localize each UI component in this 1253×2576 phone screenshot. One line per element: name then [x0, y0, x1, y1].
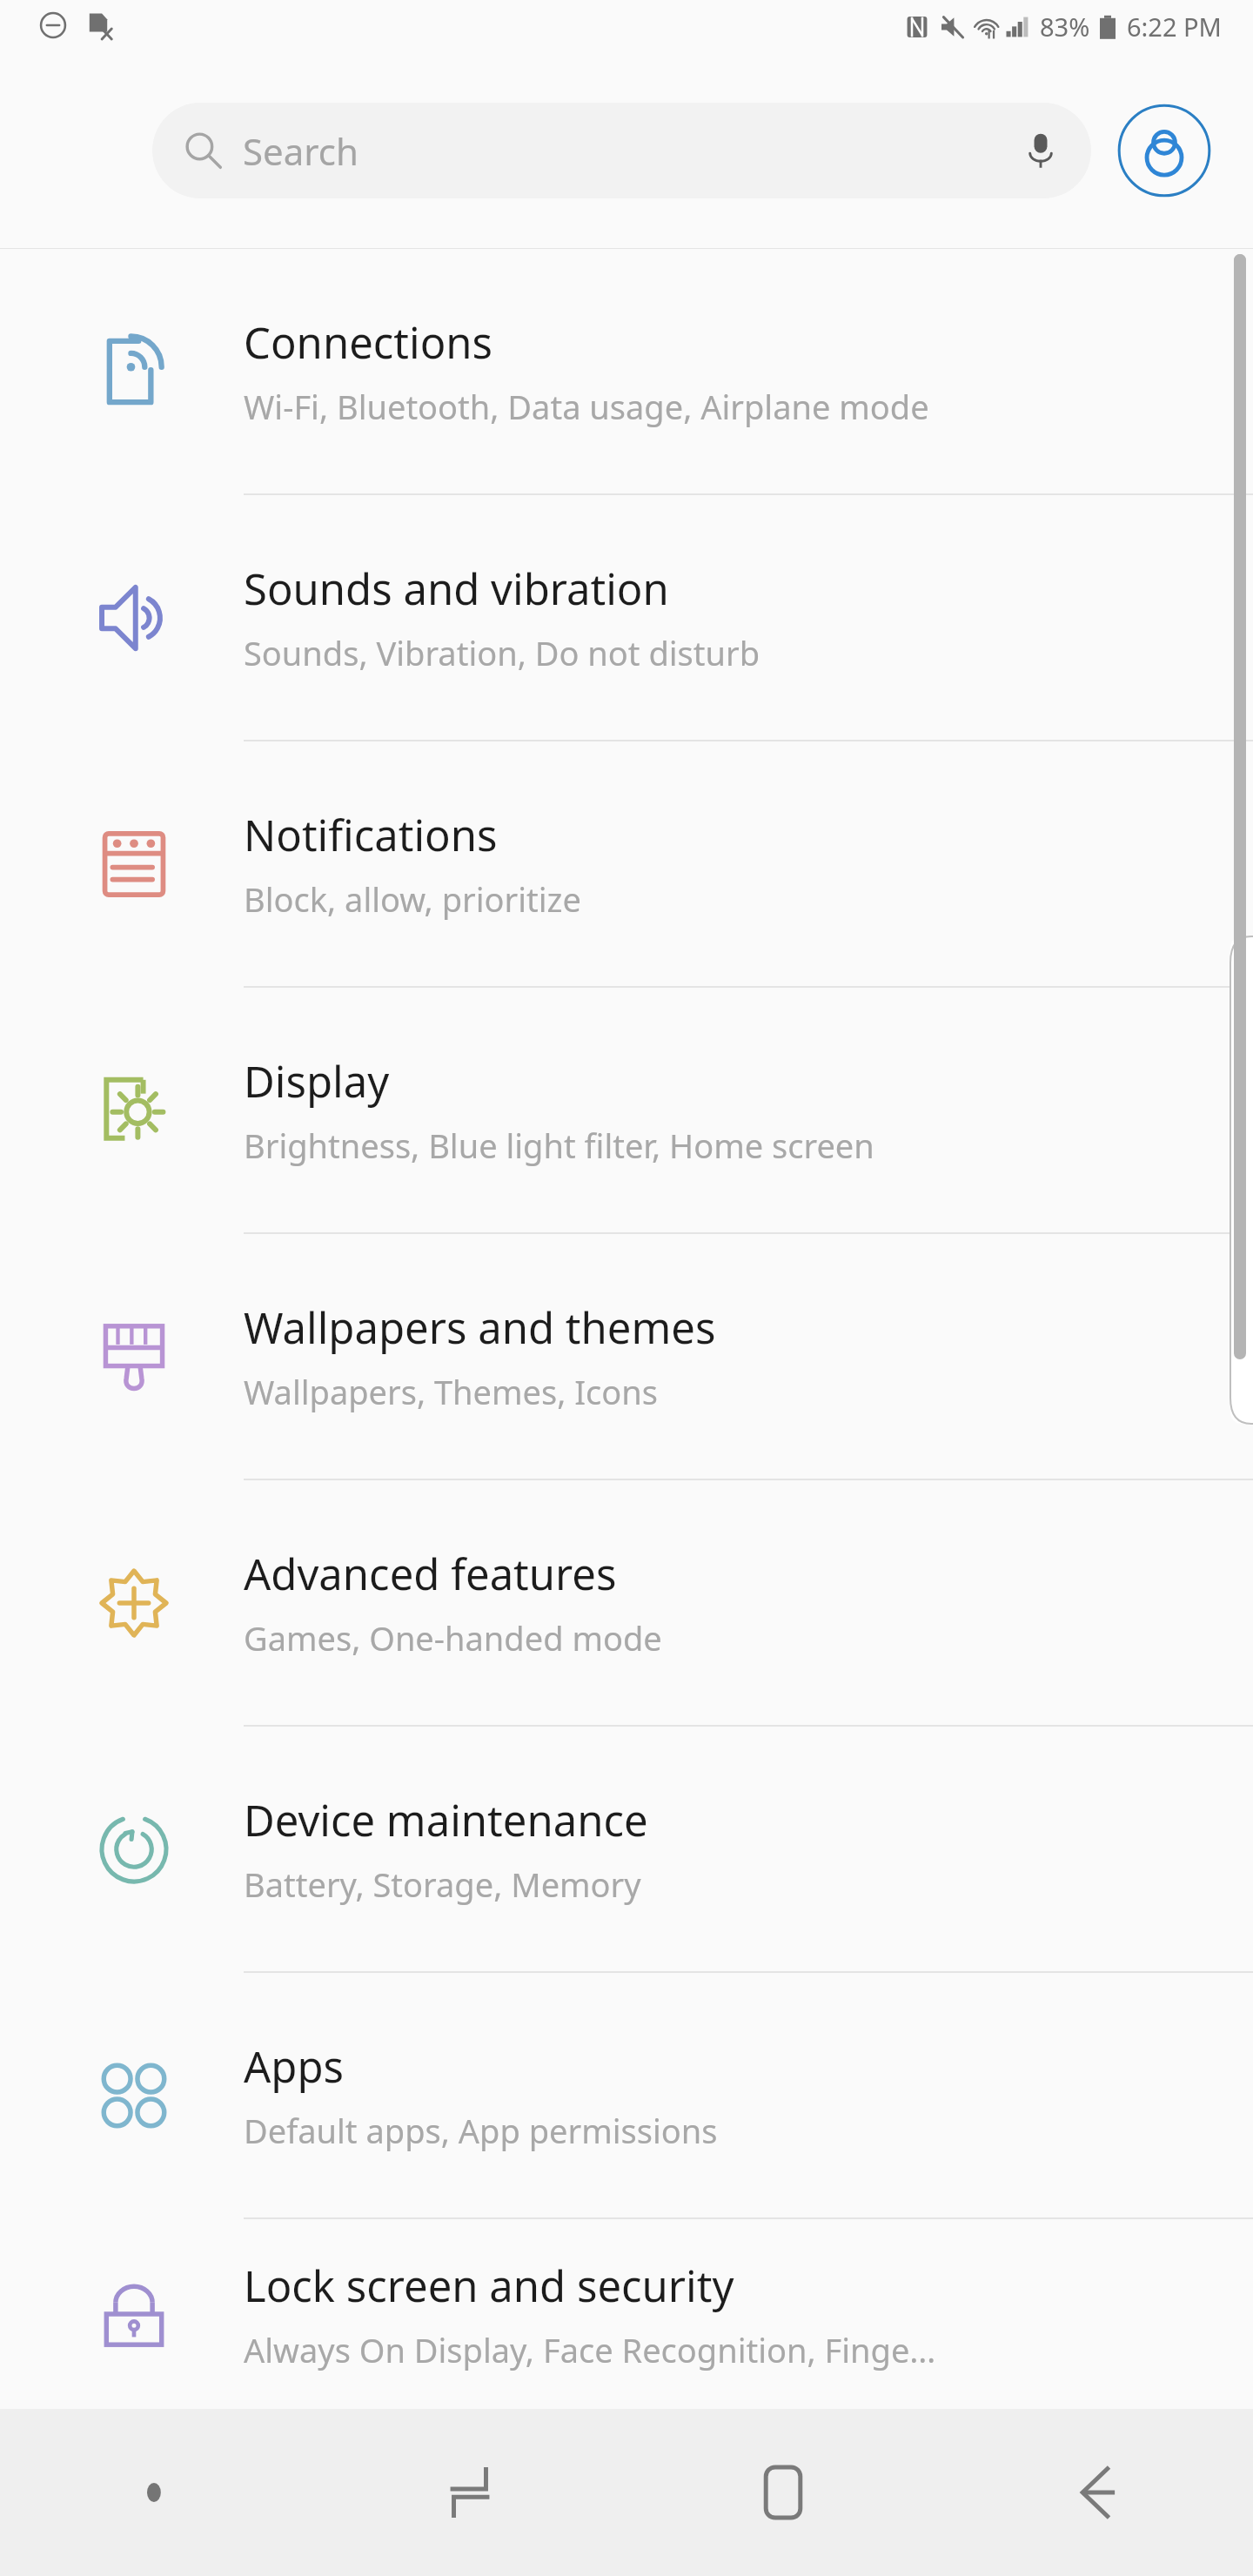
staticText: Display [244, 1052, 390, 1110]
button[interactable]: Advanced features [0, 1480, 1253, 1725]
button[interactable]: Device maintenance [0, 1727, 1253, 1971]
staticText: Games, One-handed mode [244, 1615, 662, 1660]
staticText: Wi-Fi, Bluetooth, Data usage, Airplane m… [244, 384, 929, 429]
staticText: Connections [244, 313, 493, 372]
staticText: Battery, Storage, Memory [244, 1862, 641, 1907]
staticText: Device maintenance [244, 1791, 648, 1849]
staticText: Sounds, Vibration, Do not disturb [244, 630, 761, 675]
button[interactable]: Connections [0, 249, 1253, 493]
staticText: 6:22 PM [1127, 10, 1222, 44]
button[interactable]: Sounds and vibration [0, 495, 1253, 740]
staticText: Notifications [244, 806, 498, 864]
staticText: Sounds and vibration [244, 560, 669, 618]
staticText: Search [243, 126, 358, 176]
staticText: Wallpapers, Themes, Icons [244, 1369, 659, 1414]
staticText: Block, allow, prioritize [244, 876, 581, 922]
button[interactable]: Home [626, 2409, 940, 2576]
staticText: Default apps, App permissions [244, 2108, 718, 2153]
button[interactable]: Wallpapers and themes [0, 1234, 1253, 1479]
staticText: Wallpapers and themes [244, 1298, 716, 1357]
button[interactable]: Apps [0, 1973, 1253, 2217]
button[interactable]: Notifications [0, 741, 1253, 986]
staticText: Brightness, Blue light filter, Home scre… [244, 1123, 874, 1168]
staticText: Lock screen and security [244, 2257, 734, 2315]
button[interactable]: Display [0, 988, 1253, 1232]
button[interactable]: Recents [313, 2409, 626, 2576]
staticText: Apps [244, 2037, 345, 2096]
button[interactable]: Lock screen and security [0, 2219, 1253, 2409]
other: Voice search [1022, 131, 1060, 170]
button[interactable]: Back [940, 2409, 1253, 2576]
staticText: 83% [1040, 10, 1090, 44]
staticText: Advanced features [244, 1545, 617, 1603]
staticText: Always On Display, Face Recognition, Fin… [244, 2327, 936, 2372]
button[interactable]: Account [1117, 104, 1211, 198]
button[interactable]: Search [152, 103, 1091, 198]
